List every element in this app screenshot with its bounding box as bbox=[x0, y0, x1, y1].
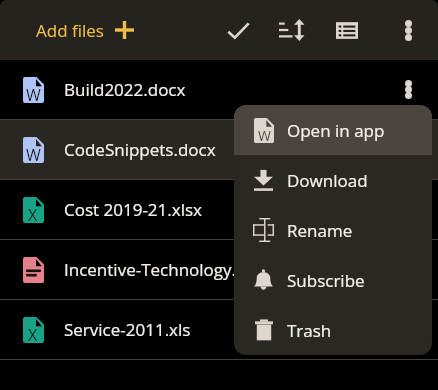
button[interactable]: Rename bbox=[234, 205, 432, 255]
button[interactable]: Change view bbox=[323, 4, 371, 56]
staticText: Cost 2019-21.xlsx bbox=[64, 198, 202, 221]
staticText: W bbox=[26, 144, 41, 166]
button[interactable]: More options bbox=[384, 4, 432, 56]
staticText: X bbox=[28, 324, 38, 346]
button[interactable]: W bbox=[0, 120, 438, 180]
button[interactable]: Download bbox=[234, 155, 432, 205]
button[interactable]: Select bbox=[214, 4, 262, 56]
button[interactable]: Subscribe bbox=[234, 255, 432, 305]
staticText: Build2022.docx bbox=[64, 78, 186, 101]
staticText: Rename bbox=[287, 219, 353, 242]
button[interactable]: W bbox=[234, 105, 432, 155]
button[interactable]: Trash bbox=[234, 305, 432, 355]
staticText: CodeSnippets.docx bbox=[64, 138, 216, 161]
button[interactable]: More options bbox=[384, 300, 432, 359]
button[interactable]: X bbox=[0, 180, 438, 240]
button[interactable]: More options bbox=[384, 60, 432, 119]
button[interactable]: Add files bbox=[24, 8, 146, 52]
staticText: Incentive-Technology.pdf bbox=[64, 258, 263, 281]
staticText: X bbox=[28, 204, 38, 226]
staticText: Subscribe bbox=[287, 269, 365, 292]
button[interactable]: More options bbox=[384, 120, 432, 179]
button[interactable]: W bbox=[0, 60, 438, 120]
button[interactable]: Incentive-Technology.pdf bbox=[0, 240, 438, 300]
button[interactable]: Sort bbox=[268, 4, 316, 56]
staticText: Add files bbox=[36, 19, 104, 42]
staticText: W bbox=[258, 126, 271, 145]
button[interactable]: X bbox=[0, 300, 438, 360]
staticText: Service-2011.xls bbox=[64, 318, 191, 341]
staticText: Download bbox=[287, 169, 368, 192]
staticText: W bbox=[26, 84, 41, 106]
staticText: Open in app bbox=[287, 119, 385, 142]
staticText: Trash bbox=[287, 319, 332, 342]
